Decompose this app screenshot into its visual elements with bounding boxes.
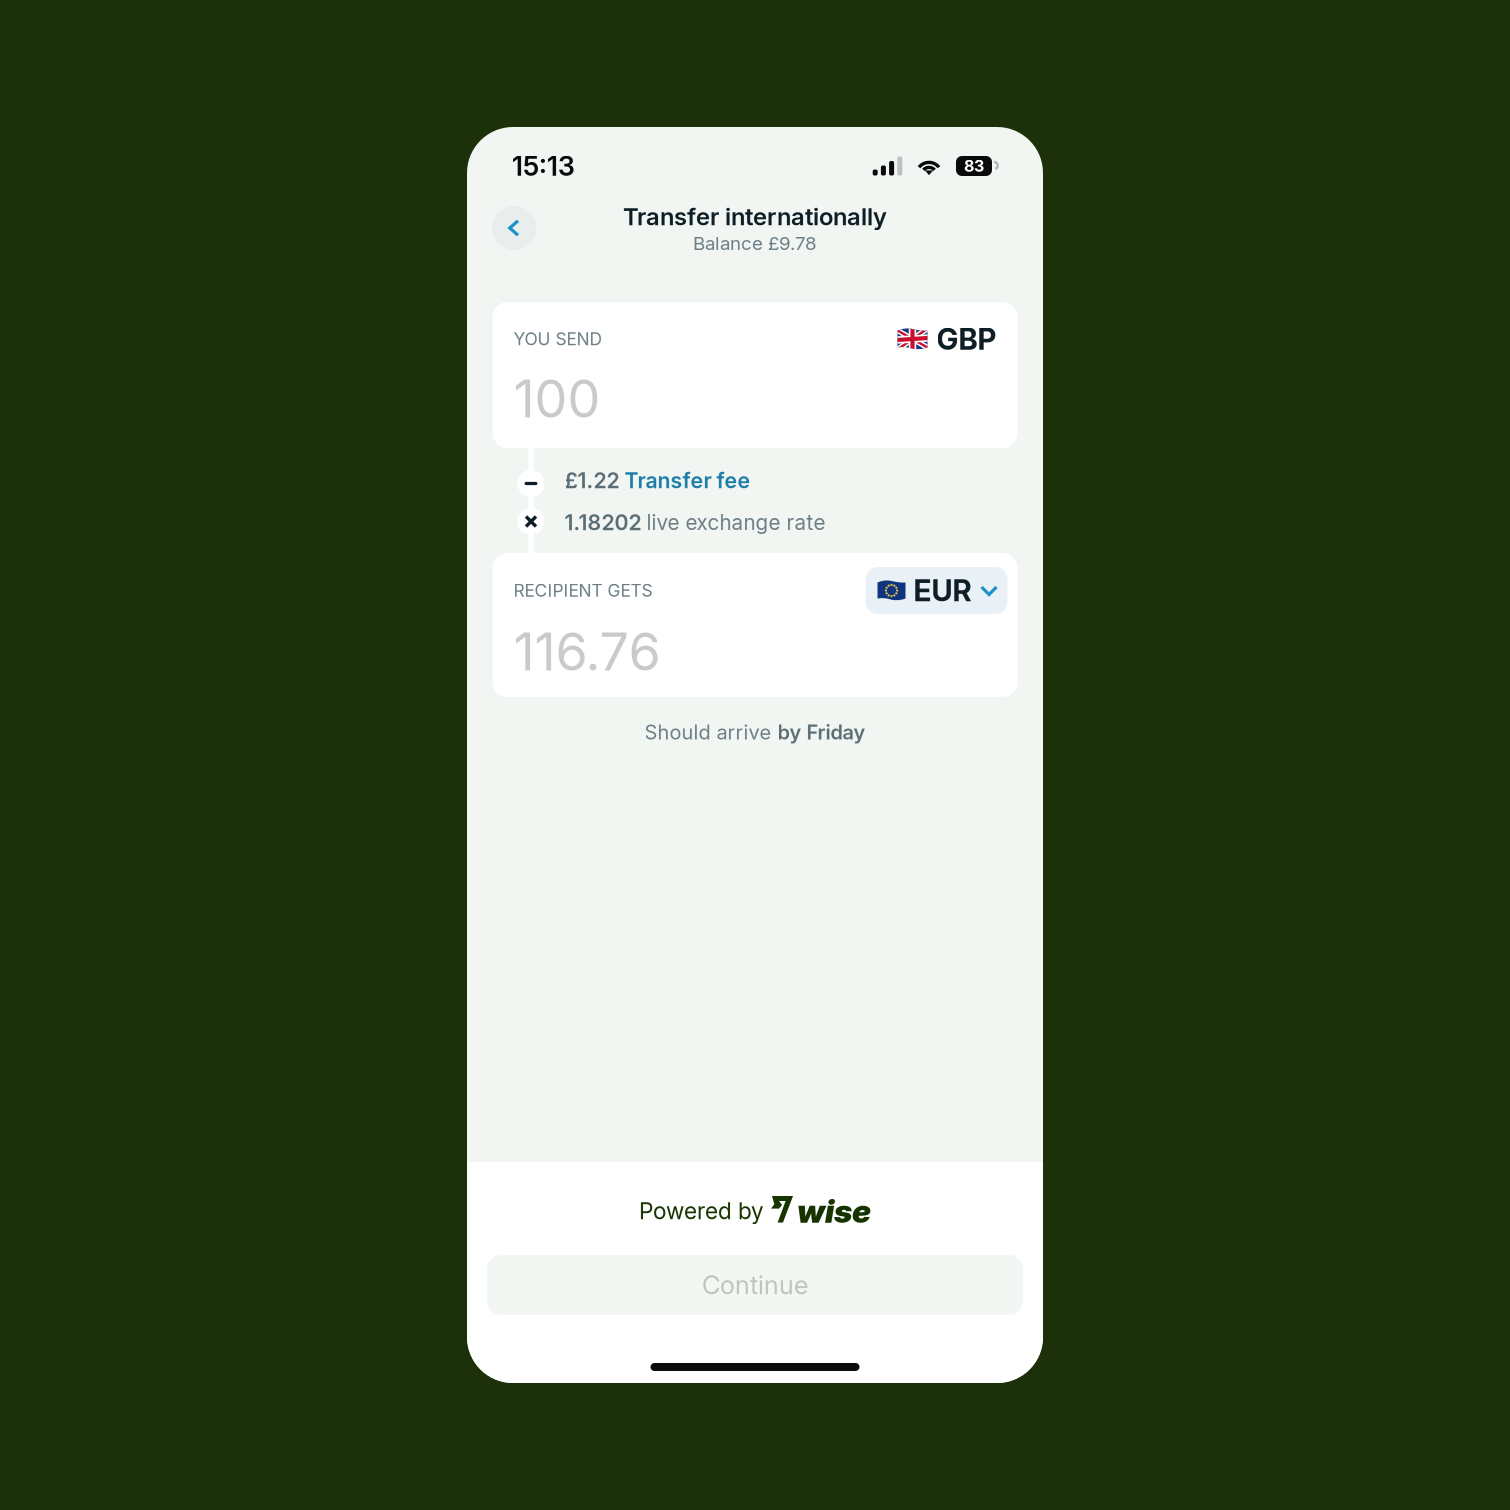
staticText: GBP [936, 321, 996, 357]
staticText: RECIPIENT GETS [513, 580, 652, 601]
staticText: wise [797, 1192, 871, 1230]
staticText: £1.22 [564, 468, 624, 493]
staticText: Continue [702, 1270, 808, 1300]
staticText: EUR [913, 573, 971, 608]
staticText: 1.18202 [564, 510, 646, 535]
staticText: YOU SEND [513, 328, 602, 349]
staticText: 116.76 [513, 620, 660, 683]
button[interactable]: EUR [865, 567, 1007, 614]
staticText: Powered by [639, 1197, 764, 1225]
button[interactable]: GBP [897, 322, 996, 356]
staticText: 100 [513, 367, 600, 430]
staticText: Balance £9.78 [693, 232, 817, 255]
staticText: Transfer fee [624, 468, 750, 493]
staticText: by Friday [777, 720, 865, 744]
staticText: Transfer internationally [623, 202, 887, 231]
button[interactable]: £1.22 [564, 470, 750, 491]
staticText: 15:13 [512, 150, 575, 182]
staticText: Should arrive [644, 720, 777, 744]
button[interactable]: Continue [487, 1255, 1023, 1315]
staticText: 83 [964, 156, 984, 176]
button[interactable]: Back [492, 206, 536, 250]
staticText: live exchange rate [646, 510, 825, 535]
